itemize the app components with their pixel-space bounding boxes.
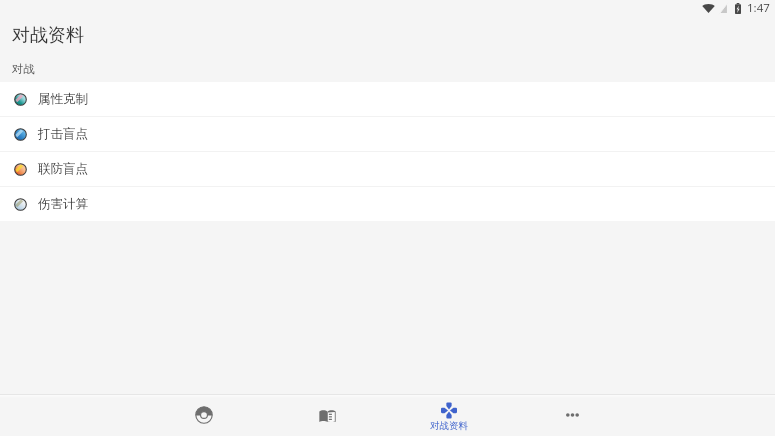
staticText: 对战 [12,62,35,76]
button[interactable]: 联防盲点 [0,152,775,186]
staticText: 对战资料 [12,24,84,47]
button[interactable]: 对战资料 [388,396,510,434]
staticText: 联防盲点 [38,161,88,177]
button[interactable]: 更多 [511,396,633,434]
staticText: 对战资料 [430,420,468,432]
button[interactable]: 伤害计算 [0,187,775,221]
staticText: 打击盲点 [38,126,88,142]
button[interactable]: 宝可梦图鉴 [143,396,265,434]
staticText: 1:47 [747,0,770,16]
staticText: 伤害计算 [38,196,88,212]
staticText: 属性克制 [38,91,88,107]
button[interactable]: 打击盲点 [0,117,775,151]
button[interactable]: 属性克制 [0,82,775,116]
button[interactable]: 道具图鉴 [266,396,388,434]
